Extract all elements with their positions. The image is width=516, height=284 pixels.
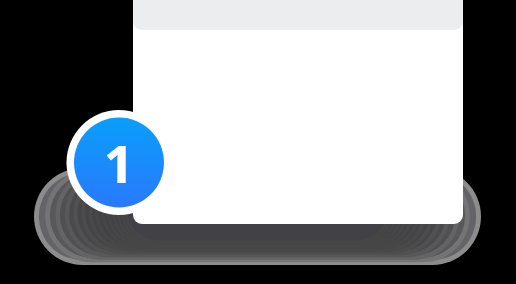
- button[interactable]: [0, 0, 516, 284]
